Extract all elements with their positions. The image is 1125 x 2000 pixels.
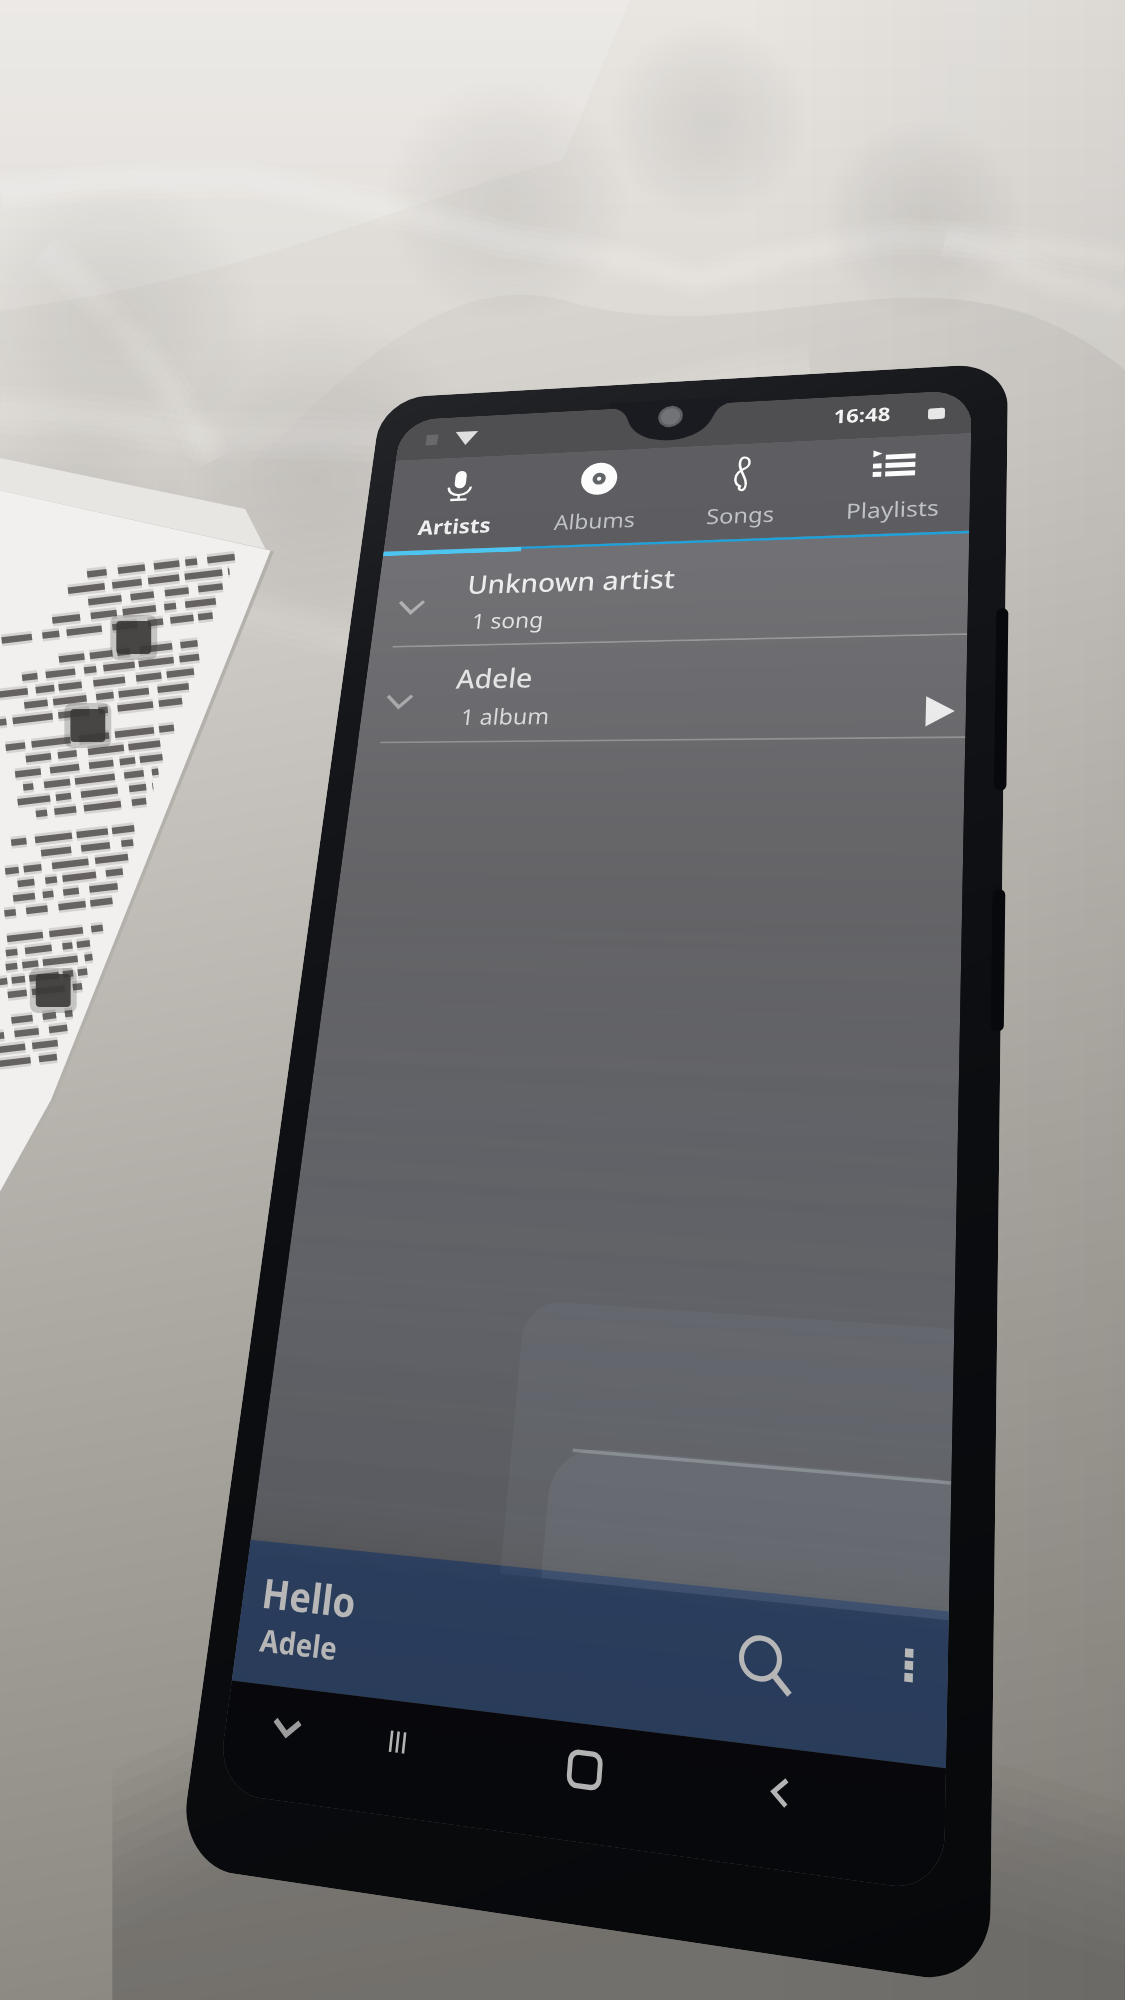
button[interactable]: Collapse player [264, 1702, 310, 1754]
button[interactable]: Playlists [814, 433, 971, 536]
button[interactable]: Artists [383, 454, 531, 552]
button[interactable]: More options [886, 1637, 932, 1689]
staticText: Songs [705, 499, 775, 530]
staticText: 1 song [470, 605, 545, 635]
staticText: 16:48 [833, 400, 891, 429]
button[interactable]: Home [555, 1736, 615, 1805]
button[interactable]: Recents [372, 1713, 423, 1772]
staticText: Playlists [845, 493, 939, 525]
button[interactable]: Search [728, 1625, 802, 1709]
staticText: Unknown artist [466, 560, 677, 602]
staticText: Adele [258, 1618, 340, 1670]
button[interactable]: Hello [232, 1540, 949, 1768]
other: Songs [721, 455, 765, 493]
button[interactable]: Back [752, 1760, 808, 1825]
other: Artists [439, 468, 481, 505]
staticText: Adele [454, 659, 535, 697]
staticText: Albums [553, 505, 637, 535]
other: Albums [577, 461, 621, 499]
other: Playlists [871, 448, 916, 486]
staticText: Hello [259, 1565, 359, 1631]
staticText: Artists [416, 511, 493, 540]
button[interactable]: Adele [358, 635, 967, 743]
button[interactable]: Albums [522, 448, 672, 547]
staticText: 1 album [459, 700, 551, 731]
button[interactable]: Songs [665, 441, 819, 542]
button[interactable]: Unknown artist [371, 536, 969, 648]
